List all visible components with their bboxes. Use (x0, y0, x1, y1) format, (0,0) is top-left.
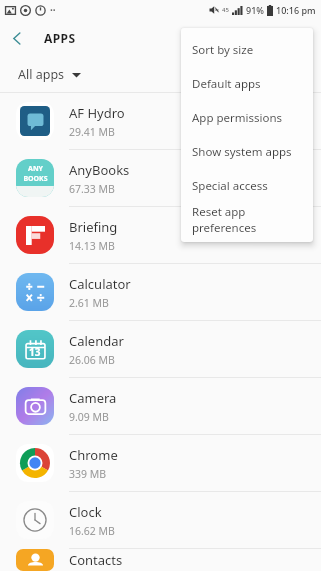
button[interactable]: Clock (0, 492, 321, 548)
button[interactable]: Chrome (0, 435, 321, 491)
button[interactable]: Calculator (0, 264, 321, 320)
button[interactable]: 13 (0, 321, 321, 377)
staticText: 10:16 pm (276, 4, 316, 16)
staticText: App permissions (192, 110, 283, 126)
button[interactable]: All apps (18, 66, 81, 83)
staticText: All apps (18, 66, 65, 83)
staticText: APPS (44, 30, 76, 46)
staticText: Calendar (69, 332, 124, 350)
button[interactable]: Camera (0, 378, 321, 434)
staticText: Chrome (69, 446, 118, 464)
staticText: BOOKS (23, 174, 48, 184)
staticText: 14.13 MB (69, 239, 115, 253)
staticText: Clock (69, 503, 102, 521)
button[interactable]: Special access (181, 169, 313, 203)
staticText: Special access (192, 178, 268, 194)
staticText: Camera (69, 389, 117, 407)
staticText: ·· (50, 3, 56, 17)
staticText: Briefing (69, 218, 118, 236)
button[interactable]: Sort by size (181, 33, 313, 67)
button[interactable]: Show system apps (181, 135, 313, 169)
staticText: Sort by size (192, 42, 254, 58)
staticText: 13 (29, 345, 41, 359)
staticText: ANY (28, 164, 43, 174)
button[interactable]: AF Hydro (0, 93, 321, 149)
staticText: 29.41 MB (69, 125, 115, 139)
staticText: 45 (222, 6, 229, 14)
staticText: 9.09 MB (69, 410, 109, 424)
staticText: Contacts (69, 551, 123, 569)
button[interactable]: Default apps (181, 67, 313, 101)
staticText: 26.06 MB (69, 353, 115, 367)
button[interactable]: Reset app preferences (181, 203, 313, 237)
staticText: AF Hydro (69, 104, 125, 122)
button[interactable]: ANY (0, 150, 321, 206)
staticText: Show system apps (192, 144, 292, 160)
staticText: 16.62 MB (69, 524, 115, 538)
staticText: 67.33 MB (69, 182, 115, 196)
button[interactable]: Briefing (0, 207, 321, 263)
staticText: Calculator (69, 275, 131, 293)
staticText: 91% (246, 4, 264, 16)
staticText: Reset app preferences (192, 204, 302, 236)
staticText: 339 MB (69, 467, 107, 481)
button[interactable]: Contacts (0, 549, 321, 571)
staticText: 2.61 MB (69, 296, 109, 310)
staticText: AnyBooks (69, 161, 130, 179)
button[interactable]: App permissions (181, 101, 313, 135)
button[interactable]: Back (0, 21, 34, 55)
staticText: Default apps (192, 76, 261, 92)
